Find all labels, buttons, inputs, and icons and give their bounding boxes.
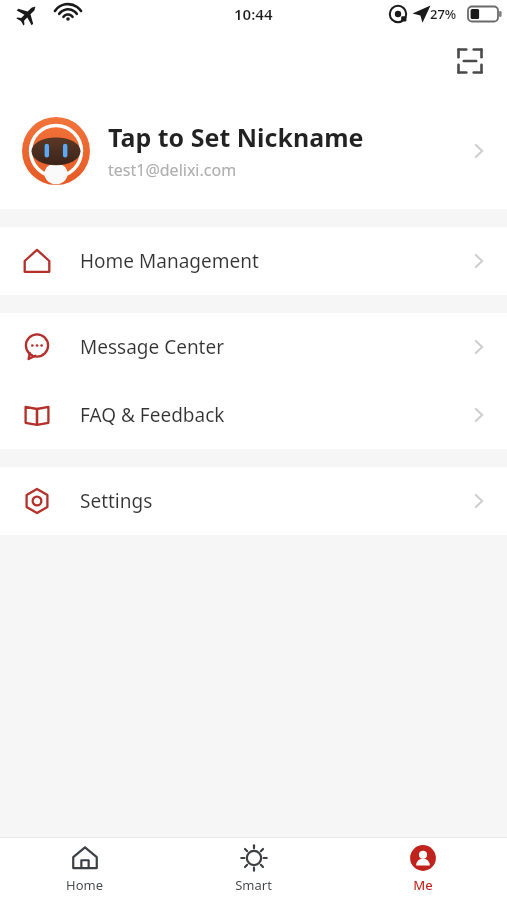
staticText: Settings xyxy=(80,488,469,514)
button[interactable]: Tap to Set Nickname xyxy=(0,92,507,209)
staticText: Tap to Set Nickname xyxy=(108,120,364,154)
button[interactable]: Smart xyxy=(169,838,338,900)
staticText: Message Center xyxy=(80,334,469,360)
staticText: Smart xyxy=(235,876,272,894)
staticText: Home xyxy=(66,876,103,894)
button[interactable]: Me xyxy=(338,838,507,900)
staticText: FAQ & Feedback xyxy=(80,402,469,428)
staticText: 27% xyxy=(430,5,457,23)
staticText: Home Management xyxy=(80,248,469,274)
button[interactable]: FAQ & Feedback xyxy=(0,381,507,449)
staticText: test1@delixi.com xyxy=(108,159,237,181)
button[interactable]: Home xyxy=(0,838,169,900)
button[interactable]: Scan QR code xyxy=(447,38,493,84)
button[interactable]: Settings xyxy=(0,467,507,535)
button[interactable]: Message Center xyxy=(0,313,507,381)
staticText: 10:44 xyxy=(234,4,273,24)
button[interactable]: Home Management xyxy=(0,227,507,295)
staticText: Me xyxy=(413,876,433,894)
